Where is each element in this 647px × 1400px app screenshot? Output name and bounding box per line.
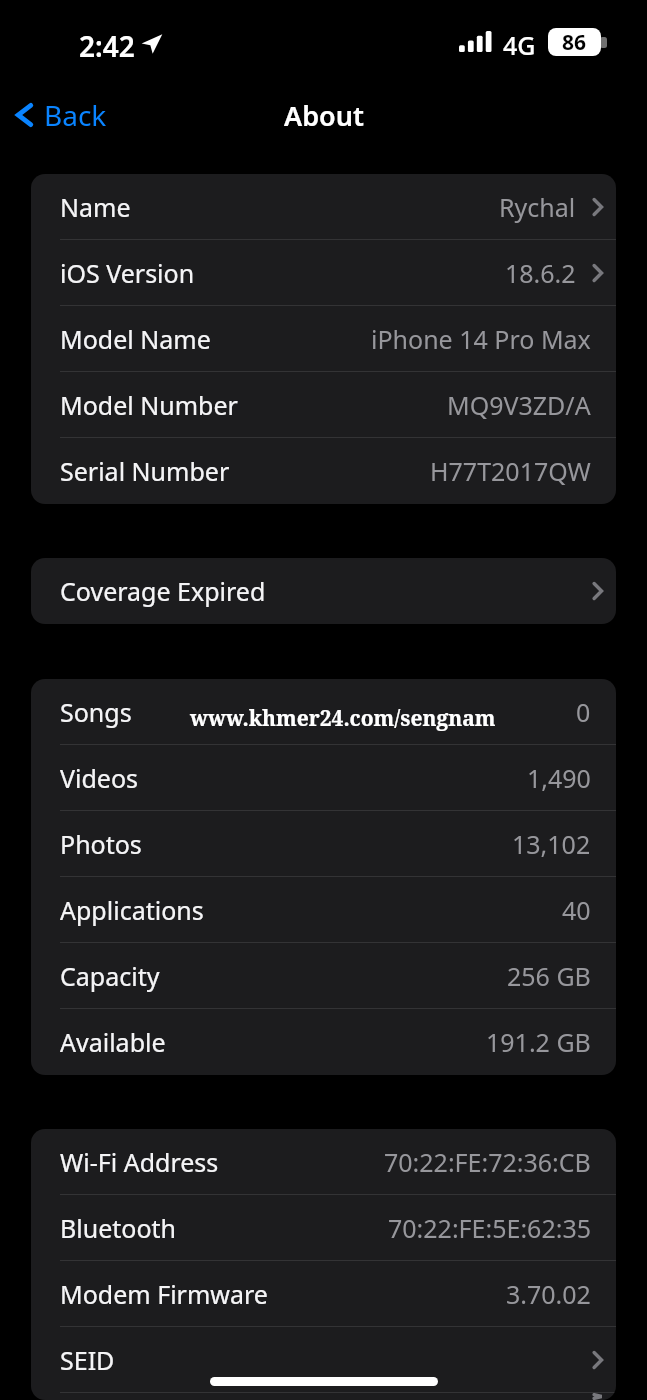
staticText: 3.70.02 bbox=[506, 1277, 591, 1311]
button[interactable]: Coverage Expired bbox=[31, 558, 616, 624]
staticText: 70:22:FE:72:36:CB bbox=[384, 1145, 591, 1179]
button[interactable]: Legal bbox=[31, 1393, 616, 1400]
staticText: Back bbox=[44, 96, 107, 134]
button[interactable]: Capacity bbox=[31, 943, 616, 1009]
staticText: Videos bbox=[60, 761, 139, 795]
staticText: Model Name bbox=[60, 322, 211, 356]
staticText: Bluetooth bbox=[60, 1211, 177, 1245]
staticText: H77T2017QW bbox=[430, 454, 591, 488]
button[interactable]: Back bbox=[0, 88, 121, 142]
staticText: Modem Firmware bbox=[60, 1277, 268, 1311]
button[interactable]: Songs bbox=[31, 679, 616, 745]
button[interactable]: Wi-Fi Address bbox=[31, 1129, 616, 1195]
staticText: 256 GB bbox=[507, 959, 591, 993]
staticText: Capacity bbox=[60, 959, 160, 993]
button[interactable]: Bluetooth bbox=[31, 1195, 616, 1261]
staticText: Model Number bbox=[60, 388, 238, 422]
staticText: 191.2 GB bbox=[486, 1025, 591, 1059]
staticText: About bbox=[284, 97, 364, 134]
button[interactable]: Modem Firmware bbox=[31, 1261, 616, 1327]
staticText: Rychal bbox=[499, 190, 576, 224]
button[interactable]: Name bbox=[31, 174, 616, 240]
button[interactable]: iOS Version bbox=[31, 240, 616, 306]
staticText: Songs bbox=[60, 695, 132, 729]
staticText: 0 bbox=[576, 695, 591, 729]
button[interactable]: Model Number bbox=[31, 372, 616, 438]
button[interactable]: Serial Number bbox=[31, 438, 616, 504]
button[interactable]: Model Name bbox=[31, 306, 616, 372]
button[interactable]: SEID bbox=[31, 1327, 616, 1393]
staticText: www.khmer24.com/sengnam bbox=[190, 704, 496, 733]
staticText: Available bbox=[60, 1025, 166, 1059]
button[interactable]: Applications bbox=[31, 877, 616, 943]
staticText: 70:22:FE:5E:62:35 bbox=[388, 1211, 591, 1245]
staticText: 4G bbox=[503, 28, 536, 62]
staticText: Photos bbox=[60, 827, 142, 861]
staticText: iOS Version bbox=[60, 256, 195, 290]
staticText: 1,490 bbox=[527, 761, 591, 795]
button[interactable]: Photos bbox=[31, 811, 616, 877]
other: Home indicator bbox=[210, 1377, 438, 1386]
staticText: MQ9V3ZD/A bbox=[447, 388, 591, 422]
button[interactable]: Available bbox=[31, 1009, 616, 1075]
staticText: Serial Number bbox=[60, 454, 230, 488]
staticText: 86 bbox=[562, 28, 587, 56]
staticText: Applications bbox=[60, 893, 204, 927]
staticText: 40 bbox=[562, 893, 591, 927]
staticText: 18.6.2 bbox=[505, 256, 576, 290]
staticText: Coverage Expired bbox=[60, 574, 266, 608]
staticText: 13,102 bbox=[512, 827, 591, 861]
staticText: Name bbox=[60, 190, 131, 224]
button[interactable]: Videos bbox=[31, 745, 616, 811]
staticText: 2:42 bbox=[79, 27, 135, 65]
staticText: SEID bbox=[60, 1343, 115, 1377]
staticText: Wi-Fi Address bbox=[60, 1145, 219, 1179]
staticText: iPhone 14 Pro Max bbox=[371, 322, 591, 356]
